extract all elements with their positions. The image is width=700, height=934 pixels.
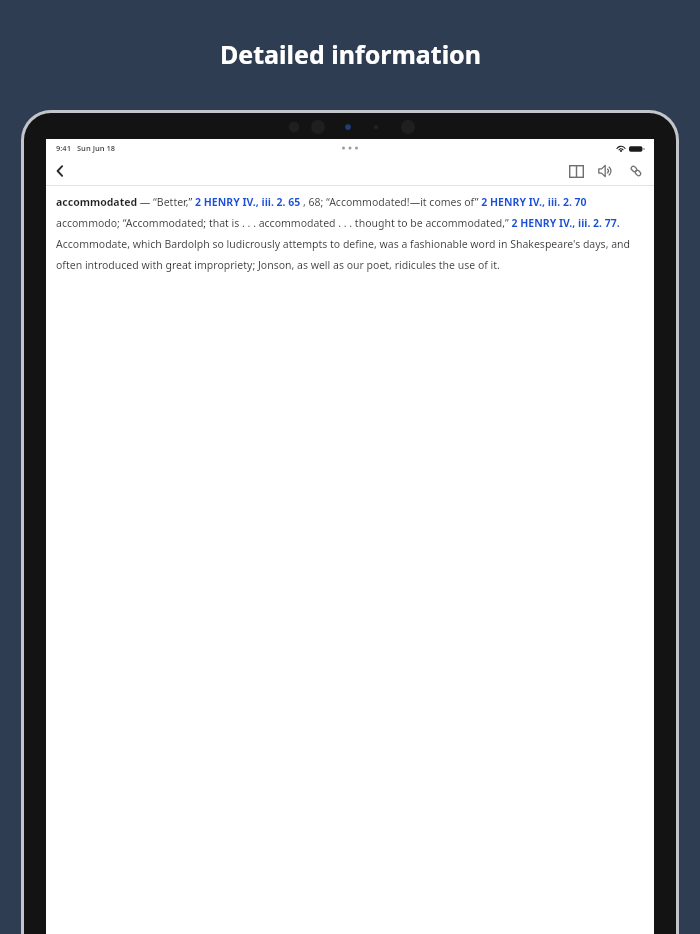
button[interactable]: Two page view [563, 158, 589, 184]
button[interactable]: Copy link [623, 158, 649, 184]
staticText: accommodated — “Better,” 2 HENRY IV., ii… [56, 195, 644, 272]
button[interactable]: Read aloud [593, 158, 619, 184]
staticText: Sun Jun 18 [77, 143, 116, 153]
staticText: 9:41 [56, 143, 71, 153]
staticText: Detailed information [220, 37, 481, 71]
button[interactable]: Back [49, 160, 71, 182]
